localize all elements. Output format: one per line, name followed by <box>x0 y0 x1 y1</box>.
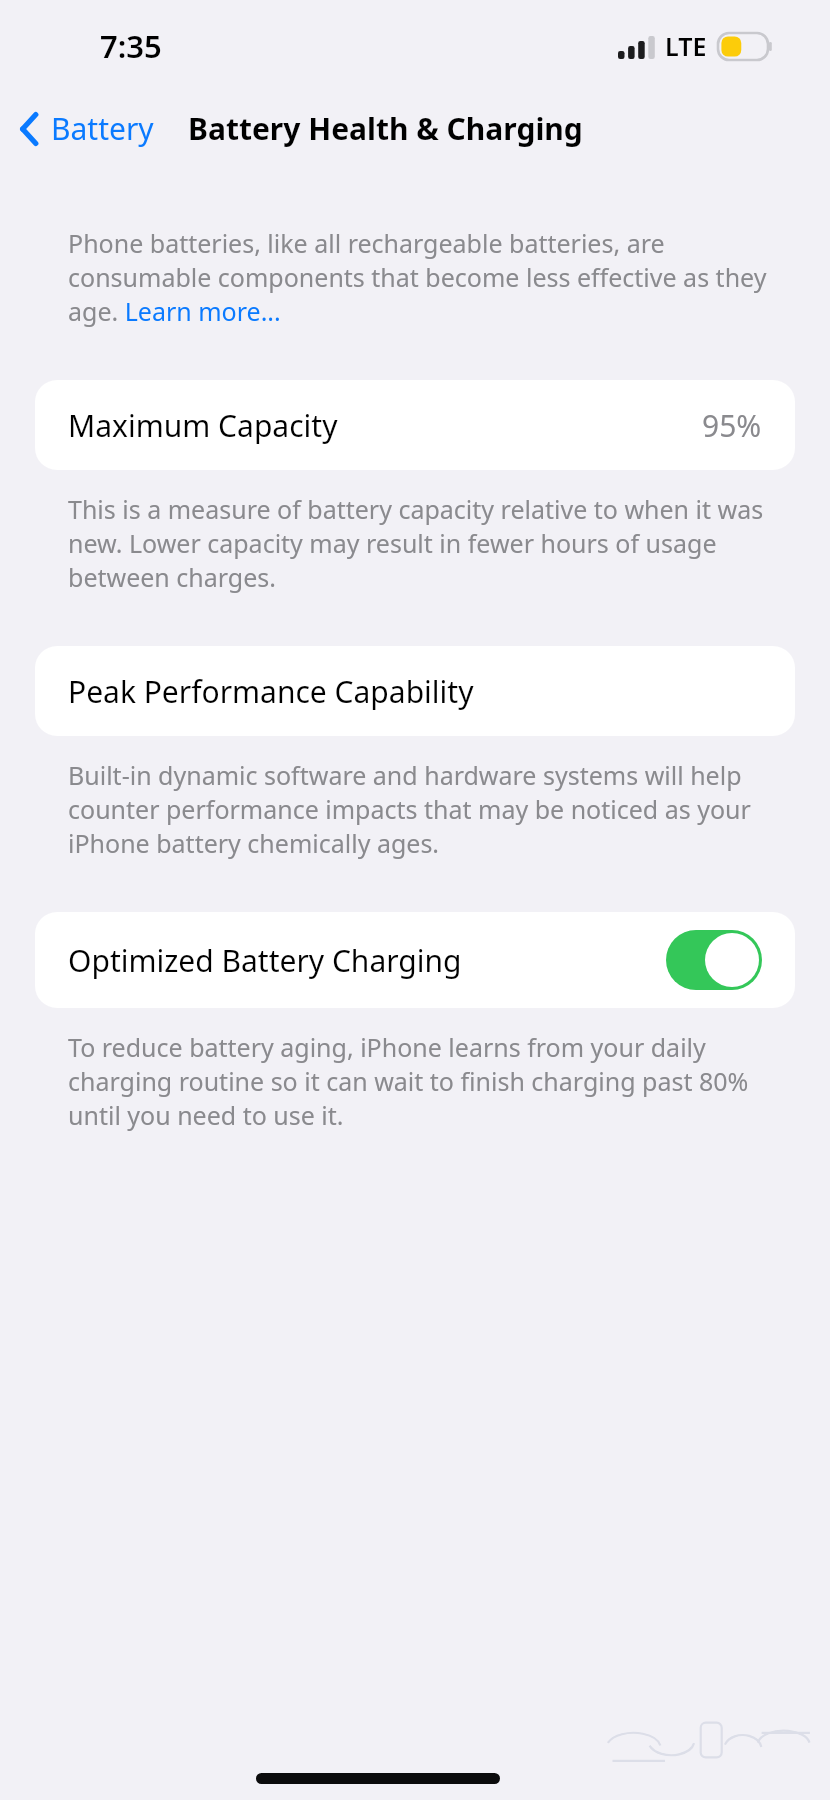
staticText: Battery <box>51 108 154 149</box>
staticText: Battery Health & Charging <box>188 108 583 149</box>
staticText: This is a measure of battery capacity re… <box>68 492 782 594</box>
staticText: Maximum Capacity <box>68 405 338 446</box>
button[interactable]: Optimized Battery Charging <box>35 912 795 1008</box>
staticText: 7:35 <box>100 25 162 67</box>
staticText: Built-in dynamic software and hardware s… <box>68 758 782 860</box>
button[interactable]: Maximum Capacity <box>35 380 795 470</box>
staticText: Phone batteries, like all rechargeable b… <box>68 226 782 328</box>
button[interactable]: Peak Performance Capability <box>35 646 795 736</box>
staticText: 95% <box>702 405 762 446</box>
button[interactable]: Optimized Battery Charging toggle <box>666 930 762 990</box>
staticText: Peak Performance Capability <box>68 671 474 712</box>
staticText: To reduce battery aging, iPhone learns f… <box>68 1030 782 1132</box>
staticText: LTE <box>665 29 707 63</box>
button[interactable]: Battery <box>0 102 162 155</box>
staticText: Optimized Battery Charging <box>68 940 462 981</box>
